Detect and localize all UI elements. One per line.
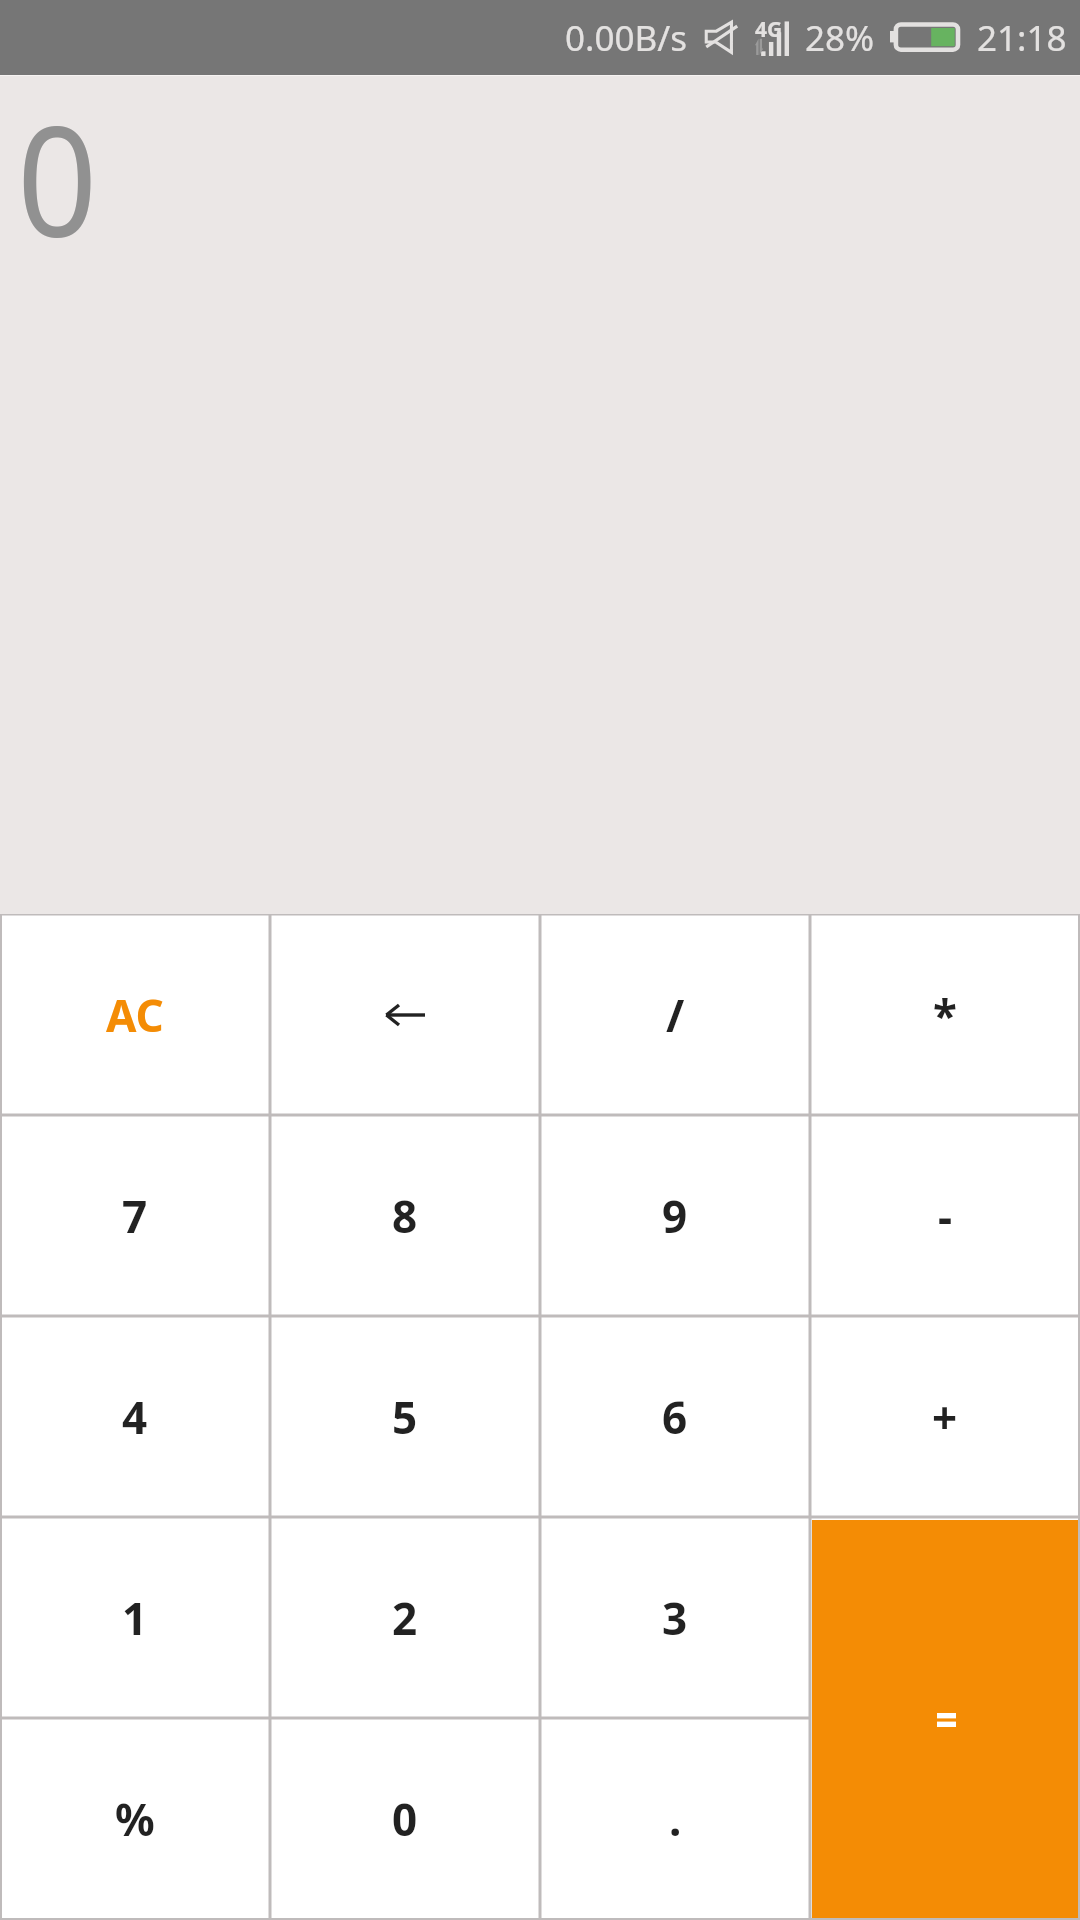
staticText: 1 [122,1588,148,1648]
staticText: 3 [662,1588,688,1648]
staticText: 0.00B/s [565,14,687,62]
button[interactable]: 5 [270,1316,540,1517]
button[interactable]: Backspace [270,914,540,1115]
button[interactable]: Divide [540,914,810,1115]
button[interactable]: Equals [812,1520,1080,1920]
staticText: 8 [392,1186,418,1246]
button[interactable]: 9 [540,1115,810,1316]
staticText: 21:18 [977,14,1067,62]
staticText: + [932,1387,958,1447]
staticText: AC [106,985,164,1045]
button[interactable]: 4 [0,1316,270,1517]
button[interactable]: 8 [270,1115,540,1316]
staticText: . [669,1789,682,1849]
staticText: 0 [17,75,98,281]
staticText: 5 [392,1387,418,1447]
button[interactable]: Multiply [810,914,1080,1115]
staticText: 0 [392,1789,418,1849]
staticText: 2 [392,1588,418,1648]
button[interactable]: Decimal point [540,1718,810,1920]
staticText: / [666,985,685,1045]
staticText: - [938,1186,953,1246]
other: Silent mode [703,20,739,56]
staticText: 4G [755,15,783,44]
staticText: 28% [805,14,875,62]
staticText: % [115,1789,155,1849]
button[interactable]: 6 [540,1316,810,1517]
button[interactable]: Percent [0,1718,270,1920]
staticText: 6 [662,1387,688,1447]
button[interactable]: Minus [810,1115,1080,1316]
button[interactable]: Plus [810,1316,1080,1517]
other: Battery 28 percent [890,20,961,56]
staticText: 9 [662,1186,688,1246]
staticText: 7 [122,1186,148,1246]
button[interactable]: 3 [540,1517,810,1718]
button[interactable]: 2 [270,1517,540,1718]
button[interactable]: AC [0,914,270,1115]
button[interactable]: 0 [270,1718,540,1920]
staticText: 4 [122,1387,148,1447]
button[interactable]: 1 [0,1517,270,1718]
staticText: * [933,985,957,1045]
button[interactable]: 7 [0,1115,270,1316]
